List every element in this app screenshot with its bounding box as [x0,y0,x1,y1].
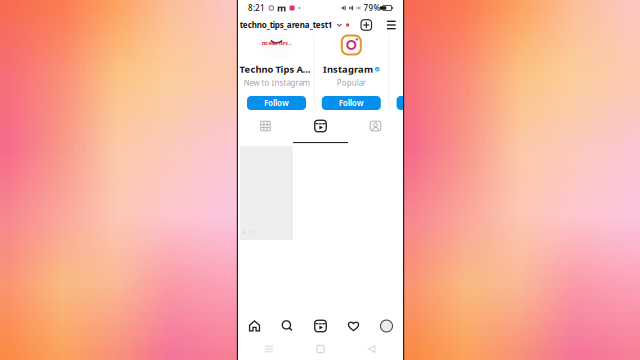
button[interactable]: Menu [383,16,399,34]
button[interactable]: techno_tips_arena_test1 [240,16,349,34]
staticText: Popular [337,77,366,88]
staticText: Follow [264,98,289,108]
button[interactable]: Posts [238,110,293,142]
button[interactable]: E [389,34,463,110]
button[interactable]: Profile [370,314,403,338]
button[interactable]: Reels [304,314,337,338]
staticText: Techno Tips Are… [239,63,313,75]
staticText: Follow [339,98,364,108]
button[interactable]: Activity [337,314,370,338]
button[interactable]: Recents [249,338,289,360]
staticText: m [277,2,286,14]
button[interactable]: TECHNO TIPS ARENA [239,34,313,110]
button[interactable]: New post [357,16,375,34]
staticText: TECHNO TIPS ARENA [261,41,291,46]
staticText: New to Instagram [243,77,309,88]
button[interactable]: Search [271,314,304,338]
staticText: Follow [414,98,439,108]
staticText: 8:21 [248,3,265,13]
button[interactable]: Reels [293,110,348,142]
staticText: 79% [364,3,381,13]
button[interactable]: Home [238,314,271,338]
button[interactable]: Instagram [314,34,388,110]
staticText: E [421,33,431,56]
staticText: Instagram [323,63,373,75]
button[interactable]: Back [352,338,392,360]
staticText: 21 [249,228,257,237]
button[interactable]: Tagged [348,110,403,142]
staticText: techno_tips_arena_test1 [240,20,333,30]
button[interactable]: Home [300,338,340,360]
